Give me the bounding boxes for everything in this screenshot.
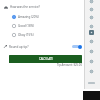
- staticText: Round up tip?: [9, 45, 29, 49]
- staticText: Tip Amount: $25.00: [0, 63, 82, 67]
- button[interactable]: Tool: [89, 39, 93, 43]
- button[interactable]: Amazing (20%): [0, 13, 83, 21]
- button[interactable]: Good (18%): [0, 22, 83, 30]
- button[interactable]: Tool: [89, 59, 93, 63]
- button[interactable]: Tool: [89, 15, 93, 19]
- staticText: CALCULATE: [39, 57, 53, 61]
- staticText: Good (18%): [18, 24, 35, 28]
- button[interactable]: Tool: [89, 24, 93, 28]
- button[interactable]: Tool: [89, 49, 93, 53]
- button[interactable]: Round up tip?: [0, 42, 83, 51]
- staticText: Okay (15%): [18, 33, 34, 37]
- staticText: How was the service?: [10, 5, 40, 9]
- button[interactable]: Tool: [89, 69, 93, 73]
- button[interactable]: Tool: [89, 7, 93, 11]
- other: Service: [4, 5, 8, 9]
- button[interactable]: Tool: [89, 0, 93, 3]
- button[interactable]: Okay (15%): [0, 31, 83, 39]
- button[interactable]: CALCULATE: [9, 55, 82, 63]
- staticText: Amazing (20%): [18, 15, 39, 19]
- button[interactable]: Zoom: [88, 82, 95, 84]
- button[interactable]: Selected tool: [89, 30, 94, 35]
